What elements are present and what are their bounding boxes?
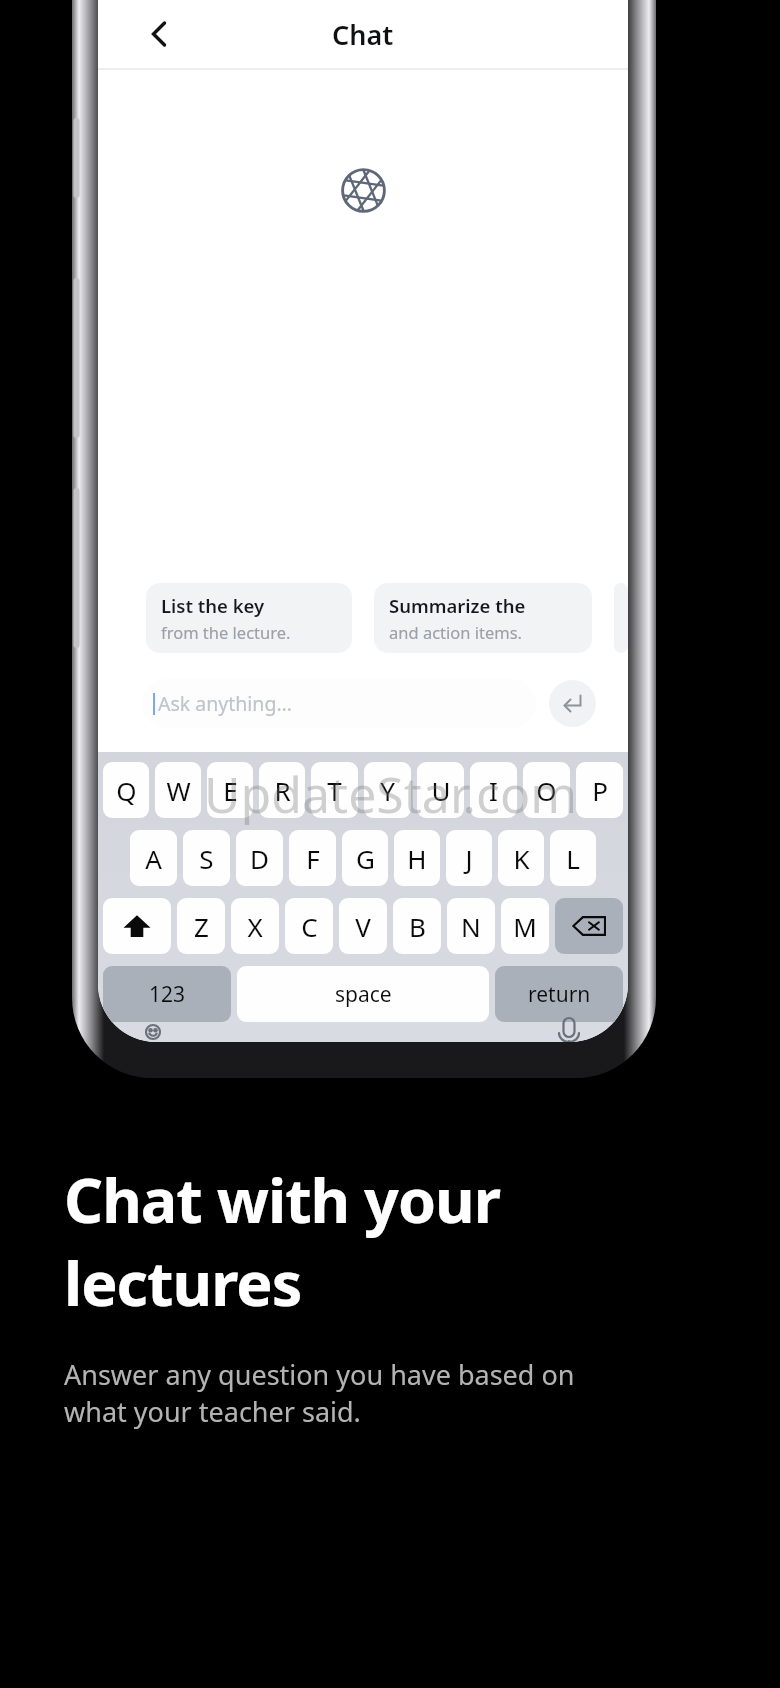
- staticText: and action items.: [389, 621, 523, 643]
- button[interactable]: C: [285, 898, 333, 954]
- staticText: A: [145, 841, 162, 876]
- button[interactable]: I: [470, 762, 517, 818]
- button[interactable]: T: [311, 762, 358, 818]
- staticText: Y: [380, 773, 395, 808]
- button[interactable]: F: [289, 830, 336, 886]
- button[interactable]: Delete: [555, 898, 623, 954]
- button[interactable]: Send: [549, 680, 596, 727]
- button[interactable]: G: [342, 830, 388, 886]
- button[interactable]: J: [446, 830, 492, 886]
- button[interactable]: Summarize the lecture: [374, 583, 592, 653]
- staticText: I: [489, 773, 498, 808]
- button[interactable]: K: [498, 830, 544, 886]
- staticText: B: [409, 909, 426, 944]
- button[interactable]: space: [237, 966, 489, 1022]
- staticText: from the lecture.: [161, 621, 291, 643]
- button[interactable]: List the key concepts: [146, 583, 352, 653]
- button[interactable]: U: [417, 762, 464, 818]
- staticText: Answer any question you have based on: [64, 1356, 575, 1393]
- staticText: Chat: [332, 16, 394, 53]
- button[interactable]: N: [447, 898, 495, 954]
- button[interactable]: D: [236, 830, 283, 886]
- button[interactable]: Emoji: [132, 1022, 174, 1042]
- button[interactable]: X: [231, 898, 279, 954]
- staticText: D: [250, 841, 269, 876]
- staticText: R: [274, 773, 291, 808]
- button[interactable]: P: [576, 762, 623, 818]
- button[interactable]: Dictate: [548, 1022, 590, 1042]
- button[interactable]: E: [207, 762, 253, 818]
- button[interactable]: Z: [177, 898, 225, 954]
- staticText: lectures: [64, 1241, 302, 1324]
- staticText: J: [465, 841, 473, 876]
- button[interactable]: O: [523, 762, 570, 818]
- staticText: space: [335, 980, 392, 1009]
- button[interactable]: Ask anything...: [142, 679, 536, 728]
- staticText: W: [166, 773, 191, 808]
- staticText: Q: [116, 773, 137, 808]
- staticText: N: [461, 909, 481, 944]
- button[interactable]: Back: [136, 11, 182, 57]
- staticText: F: [306, 841, 320, 876]
- staticText: what your teacher said.: [64, 1393, 361, 1430]
- staticText: E: [223, 773, 238, 808]
- button[interactable]: R: [259, 762, 305, 818]
- staticText: V: [355, 909, 371, 944]
- staticText: X: [247, 909, 263, 944]
- staticText: L: [566, 841, 580, 876]
- staticText: Ask anything...: [158, 690, 293, 717]
- staticText: H: [407, 841, 427, 876]
- staticText: UpdateStar.com: [204, 760, 577, 828]
- button[interactable]: Q: [103, 762, 149, 818]
- staticText: 123: [149, 980, 186, 1009]
- staticText: Z: [194, 909, 209, 944]
- staticText: K: [513, 841, 530, 876]
- staticText: U: [431, 773, 451, 808]
- staticText: M: [513, 909, 537, 944]
- button[interactable]: B: [393, 898, 441, 954]
- staticText: S: [199, 841, 214, 876]
- staticText: G: [356, 841, 375, 876]
- button[interactable]: V: [339, 898, 387, 954]
- button[interactable]: A: [130, 830, 177, 886]
- staticText: return: [528, 980, 591, 1009]
- button[interactable]: Y: [364, 762, 411, 818]
- button[interactable]: H: [394, 830, 440, 886]
- button[interactable]: W: [155, 762, 201, 818]
- button[interactable]: return: [495, 966, 623, 1022]
- staticText: T: [327, 773, 342, 808]
- staticText: P: [592, 773, 608, 808]
- staticText: O: [536, 773, 557, 808]
- button[interactable]: Shift: [103, 898, 171, 954]
- staticText: Summarize the lecture: [389, 593, 584, 618]
- staticText: Chat with your: [64, 1158, 500, 1241]
- button[interactable]: L: [550, 830, 596, 886]
- button[interactable]: 123: [103, 966, 231, 1022]
- button[interactable]: M: [501, 898, 549, 954]
- staticText: List the key concepts: [161, 593, 344, 618]
- button[interactable]: S: [183, 830, 230, 886]
- staticText: C: [301, 909, 318, 944]
